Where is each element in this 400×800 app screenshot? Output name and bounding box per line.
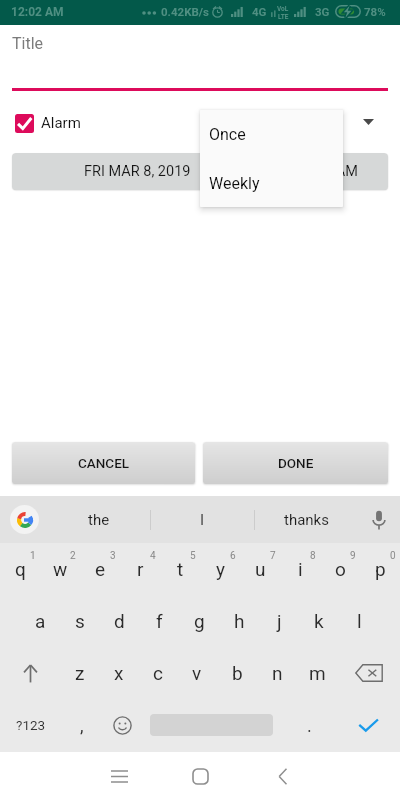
staticText: n (272, 662, 283, 684)
button[interactable]: q (0, 543, 40, 595)
button[interactable]: l (339, 595, 379, 647)
button[interactable]: k (299, 595, 339, 647)
staticText: q (15, 558, 26, 580)
button[interactable]: . (281, 699, 337, 751)
staticText: the (88, 511, 110, 529)
button[interactable]: I (151, 496, 254, 543)
staticText: 5 (190, 550, 196, 562)
staticText: Title (12, 34, 44, 53)
staticText: 9 (350, 550, 356, 562)
staticText: j (277, 610, 282, 632)
staticText: y (216, 558, 225, 580)
button[interactable]: Shift (0, 647, 60, 699)
staticText: 78% (364, 5, 386, 18)
staticText: VoL (277, 5, 289, 13)
button[interactable]: Voice input (358, 496, 400, 543)
button[interactable]: Enter (337, 699, 400, 751)
button[interactable]: e (80, 543, 120, 595)
button[interactable]: Recent apps (99, 752, 139, 800)
button[interactable]: z (60, 647, 99, 699)
button[interactable]: CANCEL (12, 442, 195, 484)
staticText: s (75, 610, 85, 632)
staticText: 12:02 AM (296, 163, 358, 180)
button[interactable]: Alarm (15, 112, 81, 134)
staticText: o (335, 558, 346, 580)
button[interactable]: Once (200, 110, 343, 159)
staticText: ?123 (16, 717, 46, 733)
button[interactable]: FRI MAR 8, 2019 (12, 153, 262, 190)
staticText: f (156, 610, 163, 632)
staticText: a (35, 610, 46, 632)
button[interactable]: a (21, 595, 60, 647)
button[interactable]: i (280, 543, 320, 595)
staticText: Alarm (41, 114, 81, 132)
button[interactable]: Weekly (200, 159, 343, 207)
button[interactable]: p (360, 543, 400, 595)
button[interactable]: s (60, 595, 99, 647)
staticText: 4 (150, 550, 156, 562)
staticText: FRI MAR 8, 2019 (84, 163, 191, 180)
staticText: c (153, 662, 163, 684)
button[interactable]: Emoji (102, 699, 142, 751)
staticText: Weekly (209, 174, 260, 193)
button[interactable]: Back (263, 752, 303, 800)
button[interactable]: Repeat mode (352, 106, 384, 138)
button[interactable]: h (219, 595, 259, 647)
staticText: e (95, 558, 106, 580)
button[interactable]: c (138, 647, 177, 699)
staticText: d (114, 610, 125, 632)
staticText: p (375, 558, 386, 580)
staticText: l (357, 610, 362, 632)
button[interactable]: x (99, 647, 138, 699)
staticText: . (307, 715, 312, 736)
button[interactable]: Google search (10, 505, 39, 534)
staticText: I (200, 511, 205, 529)
staticText: 6 (230, 550, 236, 562)
staticText: 1 (30, 550, 36, 562)
button[interactable]: f (139, 595, 179, 647)
staticText: 7 (270, 550, 276, 562)
staticText: z (75, 662, 85, 684)
staticText: v (192, 662, 202, 684)
button[interactable]: n (257, 647, 297, 699)
button[interactable]: y (200, 543, 240, 595)
button[interactable]: Backspace (337, 647, 400, 699)
button[interactable]: the (48, 496, 150, 543)
staticText: w (53, 558, 68, 580)
button[interactable]: u (240, 543, 280, 595)
staticText: u (255, 558, 266, 580)
staticText: t (177, 558, 184, 580)
button[interactable]: j (259, 595, 299, 647)
button[interactable]: d (99, 595, 139, 647)
button[interactable]: b (217, 647, 257, 699)
staticText: LTE (278, 13, 289, 21)
staticText: DONE (278, 455, 314, 471)
button[interactable]: Home (180, 752, 220, 800)
button[interactable]: t (160, 543, 200, 595)
staticText: 3 (110, 550, 116, 562)
staticText: CANCEL (78, 455, 130, 471)
button[interactable]: m (297, 647, 337, 699)
button[interactable]: g (179, 595, 219, 647)
staticText: k (314, 610, 324, 632)
button[interactable]: thanks (255, 496, 358, 543)
button[interactable]: DONE (203, 442, 388, 484)
staticText: 0.42KB/s (161, 5, 209, 18)
staticText: , (80, 715, 84, 736)
staticText: 12:02 AM (11, 5, 64, 19)
staticText: x (114, 662, 124, 684)
button[interactable]: , (62, 699, 102, 751)
button[interactable]: w (40, 543, 80, 595)
button[interactable]: 12:02 AM (266, 153, 388, 190)
staticText: r (137, 558, 144, 580)
button[interactable]: ?123 (0, 699, 62, 751)
staticText: 4G (252, 5, 267, 18)
staticText: i (298, 558, 303, 580)
staticText: 3G (315, 5, 330, 18)
button[interactable]: o (320, 543, 360, 595)
button[interactable]: v (177, 647, 217, 699)
staticText: 8 (310, 550, 316, 562)
staticText: g (194, 610, 205, 632)
button[interactable]: r (120, 543, 160, 595)
